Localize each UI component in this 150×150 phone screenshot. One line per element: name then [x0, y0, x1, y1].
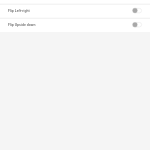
button[interactable]: Toggle	[131, 7, 141, 14]
staticText: Flip Upside down	[8, 23, 36, 27]
staticText: Flip Left-right	[8, 9, 30, 13]
button[interactable]: Flip Left-right	[0, 4, 150, 18]
button[interactable]: Toggle	[131, 21, 141, 28]
button[interactable]: Flip Upside down	[0, 18, 150, 32]
